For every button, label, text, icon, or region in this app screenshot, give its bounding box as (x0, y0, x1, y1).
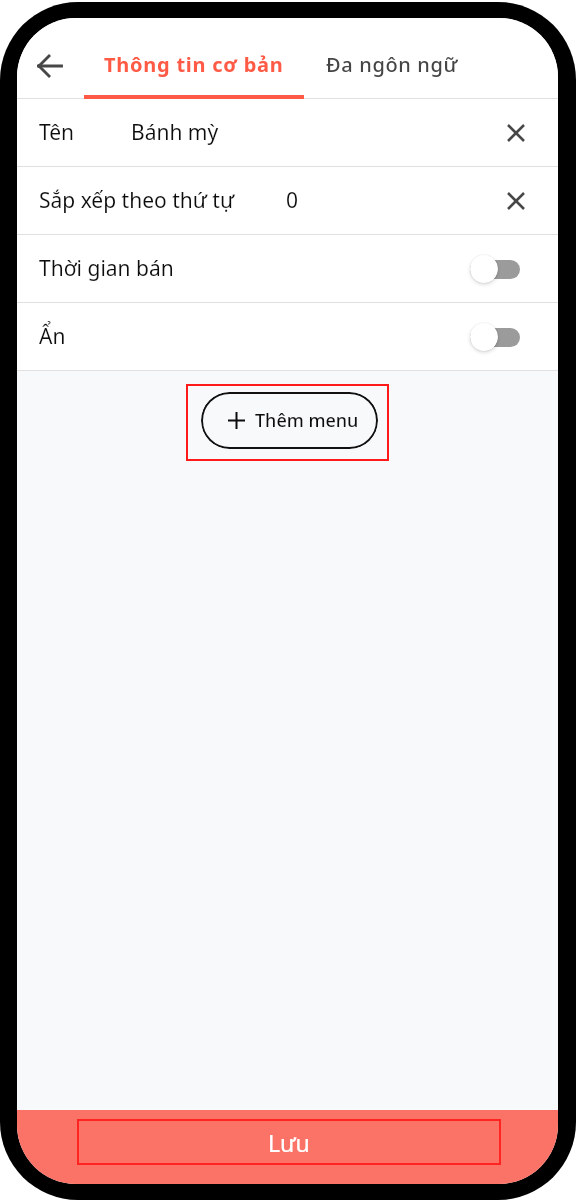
button[interactable]: Ẩn (17, 303, 558, 371)
button[interactable]: Thêm menu (201, 392, 378, 449)
button[interactable]: Lưu (77, 1119, 501, 1165)
staticText: Thêm menu (255, 408, 359, 433)
staticText: Thông tin cơ bản (104, 51, 284, 78)
button[interactable]: Thời gian bán (17, 235, 558, 303)
button[interactable]: Clear (499, 116, 533, 150)
button[interactable]: Tên (17, 99, 558, 167)
button[interactable]: Sắp xếp theo thứ tự (17, 167, 558, 235)
button[interactable]: Toggle (470, 254, 520, 284)
staticText: Ẩn (39, 322, 66, 351)
staticText: Sắp xếp theo thứ tự (39, 186, 235, 215)
button[interactable]: Thông tin cơ bản (84, 18, 304, 99)
staticText: Thời gian bán (39, 254, 174, 283)
button[interactable]: Toggle (470, 322, 520, 352)
staticText: 0 (286, 186, 299, 215)
staticText: Tên (39, 118, 75, 147)
button[interactable]: Back (32, 48, 68, 84)
staticText: Lưu (268, 1127, 310, 1158)
button[interactable]: Clear (499, 184, 533, 218)
staticText: Bánh mỳ (131, 118, 219, 147)
staticText: Đa ngôn ngữ (326, 51, 459, 78)
button[interactable]: Đa ngôn ngữ (305, 18, 480, 99)
